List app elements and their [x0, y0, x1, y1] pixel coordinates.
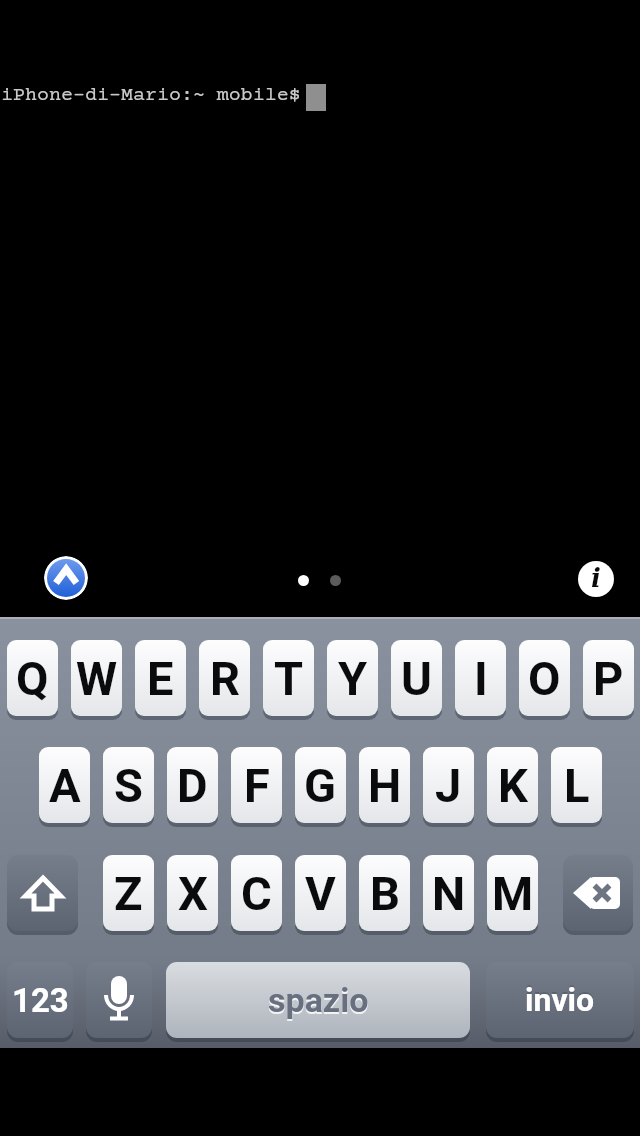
- button[interactable]: I: [455, 640, 506, 716]
- button[interactable]: T: [263, 640, 314, 716]
- staticText: M: [492, 866, 534, 921]
- staticText: invio: [525, 981, 595, 1019]
- staticText: S: [114, 758, 143, 813]
- button[interactable]: S: [103, 747, 154, 823]
- staticText: D: [177, 758, 208, 813]
- button[interactable]: P: [583, 640, 634, 716]
- button[interactable]: M: [487, 855, 538, 931]
- staticText: U: [401, 651, 432, 706]
- staticText: A: [49, 758, 81, 813]
- staticText: Z: [114, 866, 143, 921]
- button[interactable]: A: [39, 747, 90, 823]
- staticText: K: [498, 758, 528, 813]
- staticText: V: [305, 866, 336, 921]
- staticText: T: [274, 651, 304, 706]
- button[interactable]: E: [135, 640, 186, 716]
- button[interactable]: [86, 962, 152, 1038]
- button[interactable]: [7, 855, 78, 931]
- button[interactable]: F: [231, 747, 282, 823]
- staticText: E: [147, 651, 174, 706]
- staticText: Y: [338, 651, 368, 706]
- button[interactable]: B: [359, 855, 410, 931]
- button[interactable]: J: [423, 747, 474, 823]
- button[interactable]: X: [167, 855, 218, 931]
- button[interactable]: Q: [7, 640, 58, 716]
- button[interactable]: O: [519, 640, 570, 716]
- staticText: J: [435, 758, 462, 813]
- button[interactable]: Z: [103, 855, 154, 931]
- staticText: X: [178, 866, 208, 921]
- button[interactable]: D: [167, 747, 218, 823]
- button[interactable]: [44, 556, 88, 600]
- staticText: iPhone-di-Mario:~ mobile$: [1, 84, 301, 106]
- staticText: Q: [16, 651, 49, 706]
- button[interactable]: W: [71, 640, 122, 716]
- staticText: G: [304, 758, 337, 813]
- staticText: B: [370, 866, 400, 921]
- staticText: 123: [12, 981, 69, 1020]
- staticText: i: [591, 563, 601, 594]
- button[interactable]: L: [551, 747, 602, 823]
- button[interactable]: G: [295, 747, 346, 823]
- button[interactable]: spazio: [166, 962, 470, 1038]
- staticText: L: [564, 758, 590, 813]
- staticText: C: [241, 866, 272, 921]
- button[interactable]: 123: [7, 962, 73, 1038]
- button[interactable]: i: [578, 561, 614, 597]
- button[interactable]: [563, 855, 633, 931]
- staticText: P: [593, 651, 624, 706]
- button[interactable]: K: [487, 747, 538, 823]
- button[interactable]: R: [199, 640, 250, 716]
- staticText: spazio: [268, 980, 369, 1020]
- button[interactable]: N: [423, 855, 474, 931]
- staticText: W: [76, 651, 118, 706]
- staticText: R: [210, 651, 240, 706]
- staticText: I: [474, 651, 488, 706]
- staticText: H: [368, 758, 402, 813]
- staticText: O: [528, 651, 561, 706]
- button[interactable]: H: [359, 747, 410, 823]
- staticText: N: [432, 866, 466, 921]
- button[interactable]: C: [231, 855, 282, 931]
- button[interactable]: V: [295, 855, 346, 931]
- staticText: F: [244, 758, 270, 813]
- button[interactable]: Y: [327, 640, 378, 716]
- button[interactable]: U: [391, 640, 442, 716]
- button[interactable]: invio: [486, 962, 634, 1038]
